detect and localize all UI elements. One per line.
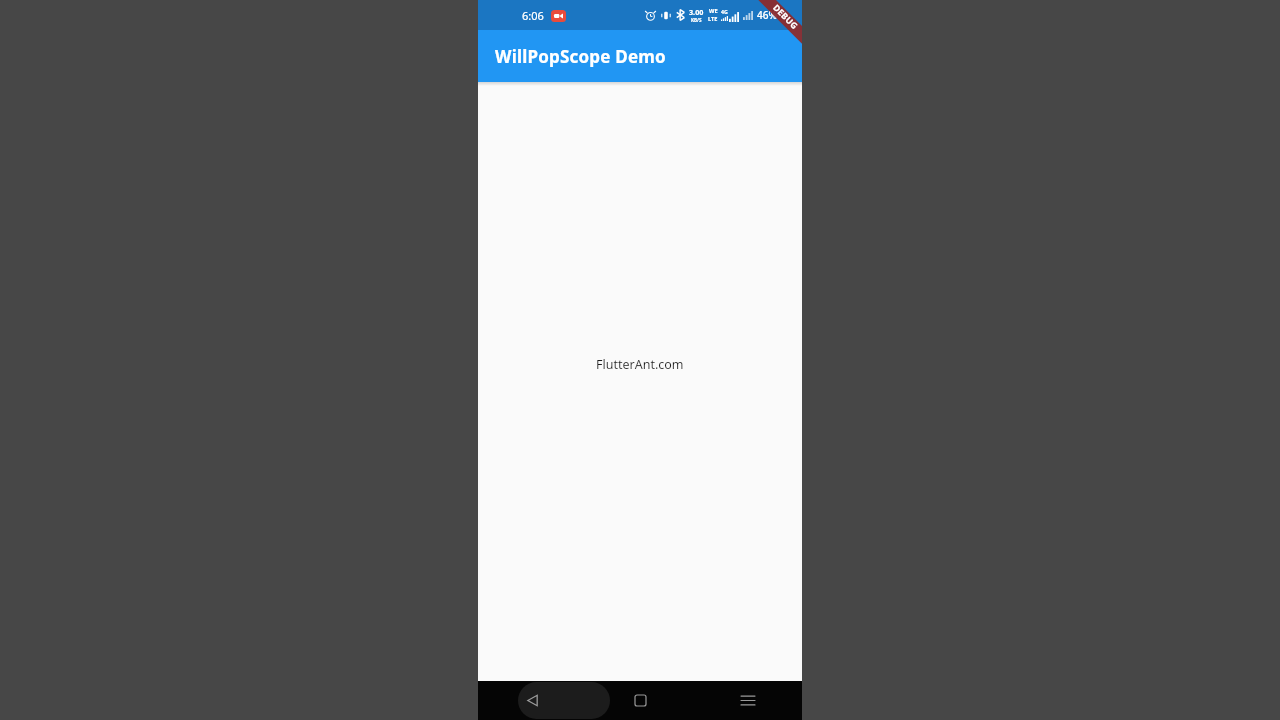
button[interactable]: Back	[478, 681, 586, 720]
button[interactable]: Home	[586, 681, 694, 720]
staticText: 3.00	[689, 7, 704, 17]
staticText: FlutterAnt.com	[596, 356, 684, 373]
staticText: LTE	[708, 15, 718, 23]
staticText: DEBUG	[770, 2, 801, 32]
staticText: 46%	[757, 8, 777, 22]
staticText: 6:06	[522, 8, 544, 23]
staticText: KB/S	[691, 17, 702, 23]
staticText: 4G	[721, 8, 728, 15]
button[interactable]: Recent apps	[694, 681, 802, 720]
staticText: WillPopScope Demo	[495, 45, 666, 68]
staticText: WE	[709, 7, 718, 15]
